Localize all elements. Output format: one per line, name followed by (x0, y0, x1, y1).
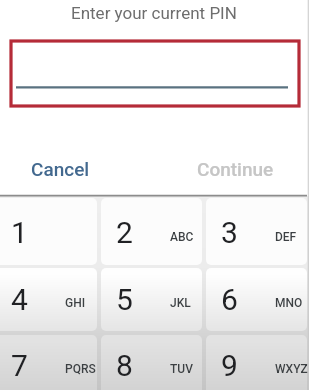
staticText: Cancel (31, 158, 90, 180)
button[interactable]: Key 4 (0, 268, 97, 331)
staticText: DEF (275, 230, 297, 244)
staticText: 6 (221, 282, 238, 317)
staticText: 7 (11, 348, 28, 383)
staticText: 8 (116, 348, 133, 383)
staticText: WXYZ (275, 362, 308, 376)
button[interactable]: Key 6 (206, 268, 307, 331)
staticText: MNO (275, 296, 303, 310)
staticText: TUV (170, 362, 193, 376)
button[interactable]: Key 1 (0, 198, 97, 265)
staticText: GHI (65, 296, 86, 310)
staticText: Enter your current PIN (71, 3, 237, 23)
button[interactable]: Key 5 (101, 268, 202, 331)
button[interactable]: Cancel (8, 148, 118, 190)
button[interactable]: Key 3 (206, 198, 307, 265)
staticText: 2 (116, 215, 133, 250)
staticText: Continue (197, 158, 274, 180)
staticText: ABC (170, 230, 194, 244)
button[interactable]: Key 8 (101, 335, 202, 390)
button[interactable]: Key 9 (206, 335, 307, 390)
button[interactable]: Key 7 (0, 335, 97, 390)
staticText: 4 (11, 282, 28, 317)
staticText: PQRS (65, 362, 96, 376)
staticText: 3 (221, 215, 238, 250)
button[interactable]: Continue (176, 148, 294, 190)
staticText: 1 (11, 215, 28, 250)
staticText: 9 (221, 348, 238, 383)
staticText: 5 (116, 282, 133, 317)
staticText: JKL (170, 296, 191, 310)
button[interactable]: Key 2 (101, 198, 202, 265)
